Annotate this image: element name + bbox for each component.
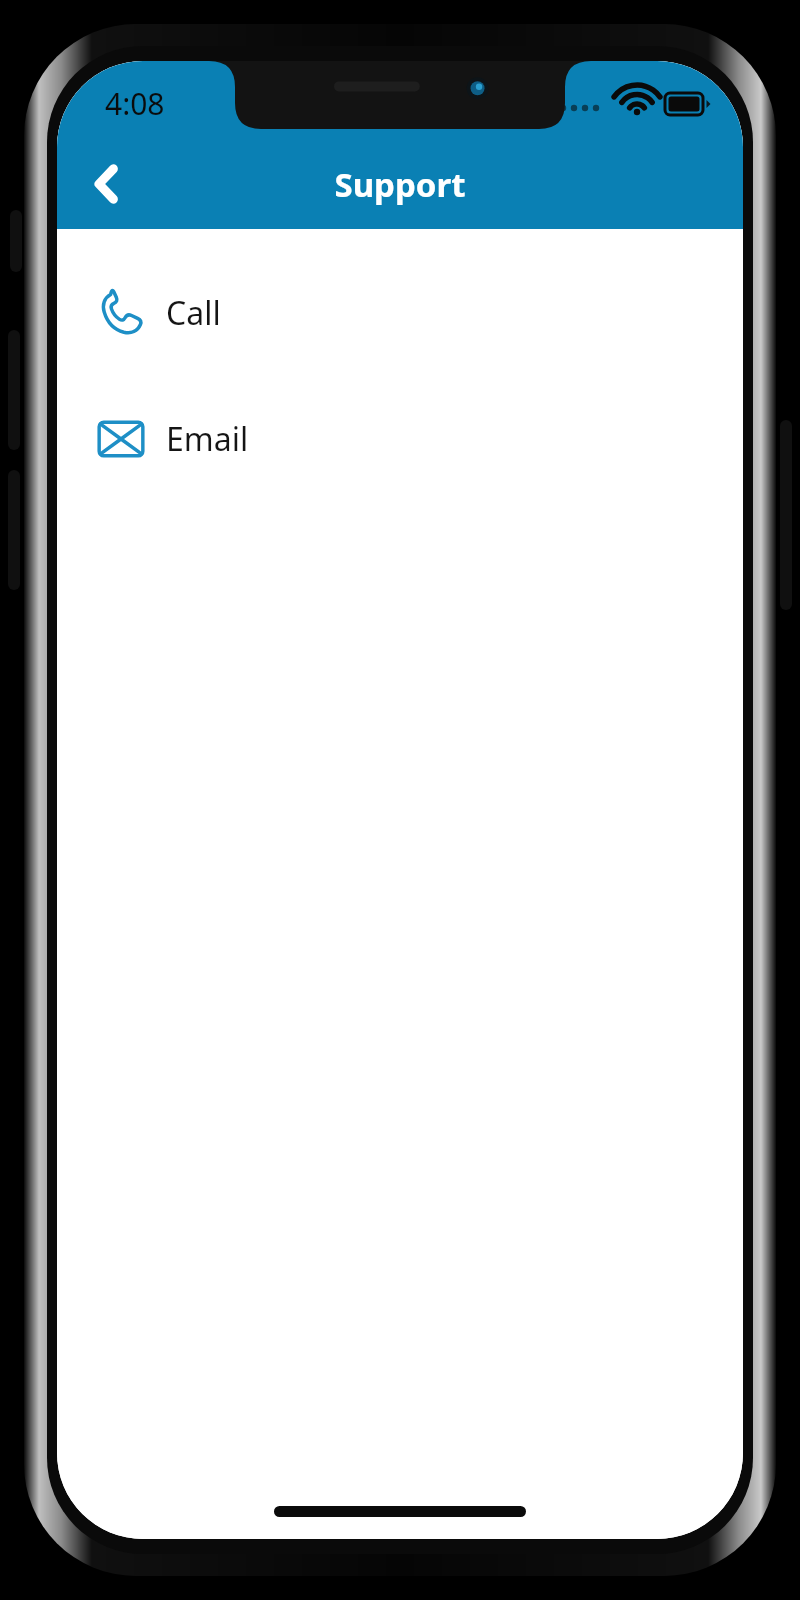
button[interactable]: Back <box>71 148 143 220</box>
button[interactable]: Email <box>57 407 743 471</box>
staticText: Support <box>334 162 466 207</box>
staticText: 4:08 <box>105 83 165 124</box>
staticText: Call <box>166 291 221 335</box>
button[interactable]: Call <box>57 281 743 345</box>
staticText: Email <box>166 417 249 461</box>
